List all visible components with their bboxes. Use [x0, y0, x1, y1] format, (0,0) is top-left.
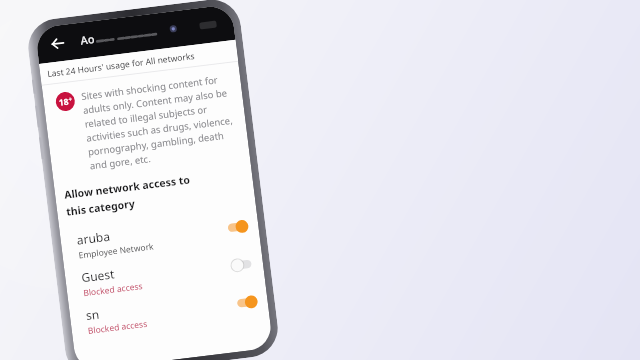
staticText: Last 24 Hours' usage for All networks: [47, 50, 196, 80]
staticText: sn: [85, 305, 101, 323]
button[interactable]: Toggle on: [225, 218, 249, 236]
button[interactable]: sn: [69, 281, 270, 343]
staticText: +: [68, 95, 73, 104]
button[interactable]: Toggle on: [235, 293, 259, 312]
button[interactable]: Toggle off: [230, 255, 254, 274]
staticText: Blocked access: [83, 280, 144, 299]
staticText: 18: [58, 96, 70, 109]
button[interactable]: Back: [43, 29, 72, 58]
staticText: Blocked access: [87, 318, 148, 337]
staticText: Ao: [79, 31, 95, 48]
button[interactable]: Guest: [64, 243, 265, 305]
staticText: aruba: [76, 228, 111, 248]
button[interactable]: aruba: [59, 206, 261, 267]
staticText: Allow network access to this category: [63, 170, 215, 219]
staticText: Guest: [80, 265, 116, 285]
staticText: Sites with shocking content for adults o…: [80, 72, 237, 172]
staticText: Employee Network: [78, 240, 155, 261]
